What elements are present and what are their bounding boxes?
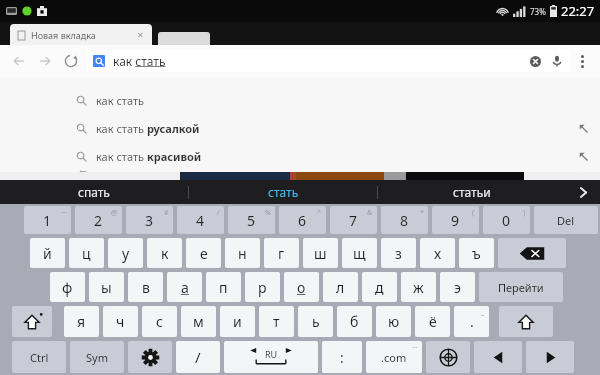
button[interactable]: п <box>206 272 241 302</box>
button[interactable]: ы <box>89 272 124 302</box>
staticText: ц <box>82 244 91 263</box>
button[interactable]: Insert suggestion <box>572 171 594 172</box>
button[interactable]: ъ <box>459 238 494 268</box>
button[interactable]: з <box>381 238 416 268</box>
button[interactable]: ц <box>69 238 104 268</box>
button[interactable]: у <box>108 238 143 268</box>
button[interactable]: Settings <box>128 341 172 373</box>
button[interactable]: Перейти <box>479 272 563 302</box>
button[interactable]: ф <box>50 272 85 302</box>
button[interactable]: о <box>284 272 319 302</box>
button[interactable]: как стать принцессой <box>0 171 600 172</box>
button[interactable]: я <box>64 306 99 337</box>
button[interactable]: Forward <box>32 48 58 74</box>
button[interactable]: ё <box>415 306 450 337</box>
button[interactable]: 0 <box>483 206 530 234</box>
button[interactable]: More options <box>570 49 594 73</box>
button[interactable]: .com <box>366 341 422 373</box>
staticText: Sym <box>86 350 108 365</box>
button[interactable]: м <box>181 306 216 337</box>
button[interactable]: 7 <box>330 206 377 234</box>
button[interactable]: : <box>322 341 362 373</box>
button[interactable]: к <box>147 238 182 268</box>
button[interactable]: Ctrl <box>12 341 66 373</box>
button[interactable]: 4 <box>177 206 224 234</box>
button[interactable]: Space <box>224 341 318 373</box>
staticText: з <box>395 244 402 263</box>
button[interactable]: в <box>128 272 163 302</box>
button[interactable]: ю <box>376 306 411 337</box>
staticText: я <box>77 312 86 331</box>
button[interactable]: статьи <box>378 180 566 204</box>
button[interactable]: г <box>264 238 299 268</box>
button[interactable]: Backspace <box>498 238 566 268</box>
staticText: и <box>233 312 242 331</box>
button[interactable]: Back <box>6 48 32 74</box>
button[interactable]: л <box>323 272 358 302</box>
button[interactable]: 3 <box>126 206 173 234</box>
staticText: ы <box>101 278 112 297</box>
button[interactable]: ч <box>103 306 138 337</box>
button[interactable]: Shift <box>499 306 553 337</box>
button[interactable]: New tab <box>158 32 210 45</box>
button[interactable]: как стать русалкой <box>0 115 600 141</box>
staticText: к <box>161 244 169 263</box>
button[interactable]: как стать красивой <box>0 143 600 169</box>
button[interactable]: ш <box>303 238 338 268</box>
staticText: статьи <box>453 184 491 200</box>
staticText: б <box>350 312 359 331</box>
button[interactable]: 2 <box>75 206 122 234</box>
button[interactable]: Voice search <box>548 52 566 70</box>
staticText: ш <box>314 244 327 263</box>
button[interactable]: а <box>167 272 202 302</box>
button[interactable]: х <box>420 238 455 268</box>
button[interactable]: р <box>245 272 280 302</box>
button[interactable]: й <box>30 238 65 268</box>
button[interactable]: Del <box>534 206 598 234</box>
button[interactable]: Change language <box>426 341 470 373</box>
button[interactable]: More suggestions <box>566 180 600 204</box>
button[interactable]: 6 <box>279 206 326 234</box>
staticText: ф <box>62 278 73 297</box>
button[interactable]: как стать <box>0 87 600 113</box>
button[interactable]: ж <box>401 272 436 302</box>
staticText: Del <box>557 213 575 228</box>
button[interactable]: Move left <box>474 341 522 373</box>
button[interactable]: т <box>259 306 294 337</box>
button[interactable]: стать <box>189 180 377 204</box>
button[interactable]: как стать <box>87 50 570 72</box>
button[interactable]: Новая вкладка <box>10 24 152 45</box>
staticText: как стать русалкой <box>96 121 200 136</box>
staticText: е <box>200 244 208 263</box>
button[interactable]: Reload <box>58 48 84 74</box>
button[interactable]: Shift <box>12 306 52 337</box>
button[interactable]: спать <box>0 180 188 204</box>
staticText: / <box>195 347 201 367</box>
button[interactable]: / <box>176 341 220 373</box>
button[interactable]: е <box>186 238 221 268</box>
button[interactable]: Insert suggestion <box>572 117 594 139</box>
button[interactable]: и <box>220 306 255 337</box>
button[interactable]: ь <box>298 306 333 337</box>
button[interactable]: с <box>142 306 177 337</box>
button[interactable]: Insert suggestion <box>572 145 594 167</box>
button[interactable]: Sym <box>70 341 124 373</box>
button[interactable]: щ <box>342 238 377 268</box>
button[interactable]: д <box>362 272 397 302</box>
staticText: спать <box>78 184 110 200</box>
button[interactable]: . <box>454 306 489 337</box>
button[interactable]: Clear <box>526 52 544 70</box>
staticText: 8 <box>400 211 409 230</box>
button[interactable]: Close tab <box>134 29 146 41</box>
staticText: как стать <box>113 53 166 69</box>
button[interactable]: э <box>440 272 475 302</box>
button[interactable]: 9 <box>432 206 479 234</box>
button[interactable]: 1 <box>24 206 71 234</box>
staticText: т <box>273 312 280 331</box>
button[interactable]: н <box>225 238 260 268</box>
button[interactable]: 5 <box>228 206 275 234</box>
button[interactable]: 8 <box>381 206 428 234</box>
button[interactable]: б <box>337 306 372 337</box>
staticText: 5 <box>247 211 256 230</box>
button[interactable]: Move right <box>526 341 574 373</box>
